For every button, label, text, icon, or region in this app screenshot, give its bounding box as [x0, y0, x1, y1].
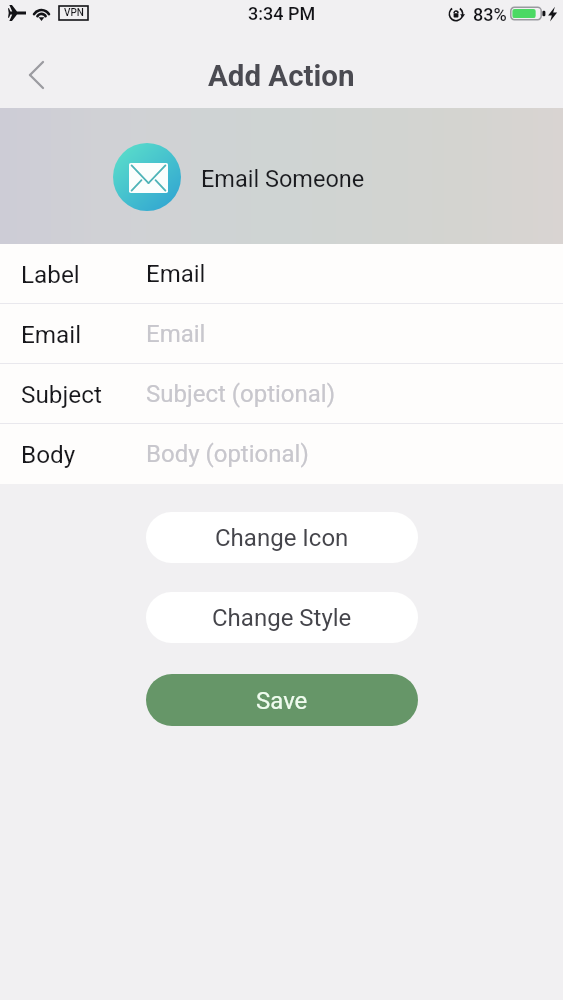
button[interactable]: Label [0, 244, 563, 304]
staticText: Subject [21, 380, 102, 408]
button[interactable]: Save [146, 674, 418, 726]
button[interactable]: Change Icon [146, 512, 418, 563]
staticText: Email [146, 260, 206, 288]
staticText: 3:34 PM [248, 3, 316, 24]
staticText: Body [21, 440, 76, 468]
staticText: Add Action [208, 59, 355, 94]
button[interactable]: Subject [0, 364, 563, 424]
staticText: Email [146, 320, 206, 348]
staticText: Subject (optional) [146, 380, 336, 408]
staticText: Save [256, 687, 308, 715]
button[interactable]: Back [9, 48, 63, 102]
button[interactable]: Change Style [146, 592, 418, 643]
button[interactable]: Email [0, 304, 563, 364]
staticText: Body (optional) [146, 440, 309, 468]
staticText: Label [21, 260, 80, 288]
staticText: Email [21, 320, 82, 348]
staticText: VPN [64, 7, 84, 19]
staticText: 83% [473, 4, 507, 25]
staticText: Email Someone [201, 165, 365, 193]
staticText: Change Icon [215, 524, 349, 552]
staticText: Change Style [212, 604, 352, 632]
button[interactable]: Body [0, 424, 563, 484]
